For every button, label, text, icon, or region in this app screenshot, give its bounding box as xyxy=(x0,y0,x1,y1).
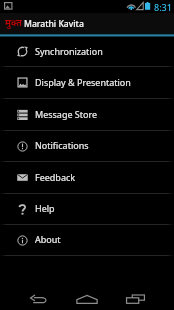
staticText: Marathi Kavita xyxy=(24,18,84,30)
staticText: About xyxy=(35,233,61,245)
staticText: Notifications xyxy=(35,139,89,151)
button[interactable]: Back xyxy=(18,288,58,310)
staticText: Synchronization xyxy=(35,45,103,57)
staticText: Display & Presentation xyxy=(35,76,131,88)
button[interactable]: Message Store xyxy=(0,99,174,130)
button[interactable]: मुक्त xyxy=(0,13,174,34)
button[interactable]: About xyxy=(0,225,174,255)
staticText: Help xyxy=(35,202,55,214)
button[interactable]: Synchronization xyxy=(0,37,174,66)
button[interactable]: Home xyxy=(67,288,107,310)
button[interactable]: Feedback xyxy=(0,162,174,193)
staticText: मुक्त xyxy=(5,16,22,28)
staticText: Message Store xyxy=(35,108,98,120)
button[interactable]: Recent apps xyxy=(115,288,155,310)
button[interactable]: Display & Presentation xyxy=(0,67,174,98)
button[interactable]: Help xyxy=(0,194,174,224)
staticText: 8:31 xyxy=(154,1,172,13)
staticText: Feedback xyxy=(35,171,76,183)
button[interactable]: Notifications xyxy=(0,131,174,161)
